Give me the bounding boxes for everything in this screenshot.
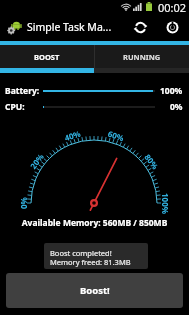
button[interactable]: Refresh [127, 13, 153, 41]
staticText: CPU: [5, 101, 25, 113]
staticText: 0% [18, 197, 29, 209]
staticText: Boost! [80, 284, 110, 297]
staticText: 100% [160, 85, 183, 97]
staticText: 0% [170, 101, 183, 113]
staticText: Battery: [5, 85, 40, 97]
staticText: 20% [27, 151, 46, 171]
staticText: 100% [160, 193, 171, 214]
staticText: RUNNING [123, 52, 161, 62]
staticText: 00:02 [158, 0, 187, 13]
staticText: 40% [63, 127, 82, 143]
button[interactable]: Settings [159, 13, 185, 41]
button[interactable]: Boost! [6, 273, 183, 308]
staticText: Memory freed: 81.3MB [50, 257, 131, 267]
staticText: Simple Task Ma... [27, 20, 112, 34]
staticText: Boost completed! [50, 248, 112, 258]
button[interactable]: BOOST [0, 45, 94, 68]
staticText: 80% [142, 152, 161, 172]
staticText: Available Memory: 560MB / 850MB [0, 217, 189, 229]
button[interactable]: RUNNING [94, 45, 189, 68]
staticText: BOOST [34, 52, 60, 62]
staticText: 60% [106, 128, 126, 143]
